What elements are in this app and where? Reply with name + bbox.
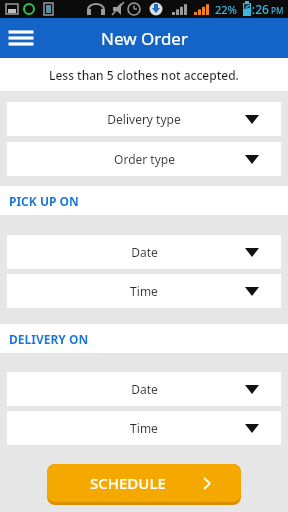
staticText: SCHEDULE (90, 473, 166, 493)
staticText: Delivery type (107, 111, 181, 127)
staticText: Time (130, 283, 158, 299)
staticText: 22% (215, 2, 237, 17)
button[interactable]: Order type (7, 142, 281, 176)
staticText: PICK UP ON (9, 193, 79, 209)
button[interactable]: Time (7, 411, 281, 445)
staticText: Less than 5 clothes not accepted. (49, 67, 239, 83)
staticText: Date (131, 244, 158, 260)
button[interactable]: SCHEDULE (47, 464, 241, 505)
staticText: 6:26 (245, 1, 269, 17)
button[interactable]: Date (7, 235, 281, 269)
staticText: PM (271, 5, 284, 16)
button[interactable]: Open navigation menu (6, 23, 36, 53)
staticText: DELIVERY ON (9, 331, 89, 347)
staticText: Time (130, 420, 158, 436)
staticText: Date (131, 381, 158, 397)
button[interactable]: Time (7, 274, 281, 308)
staticText: Order type (114, 151, 175, 167)
staticText: New Order (101, 27, 188, 50)
button[interactable]: Date (7, 372, 281, 406)
button[interactable]: Delivery type (7, 102, 281, 136)
